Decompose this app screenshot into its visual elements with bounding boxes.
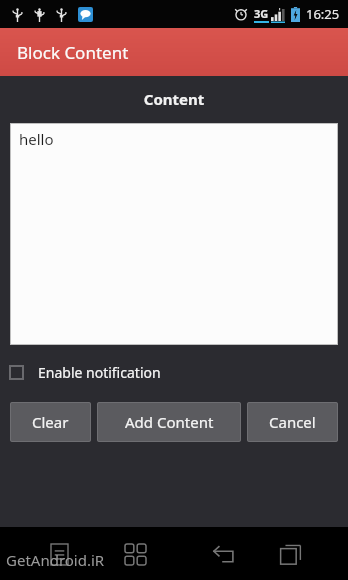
staticText: Cancel xyxy=(269,412,316,432)
staticText: Add Content xyxy=(125,412,214,432)
button[interactable]: Block Content xyxy=(0,28,348,76)
button[interactable]: Add Content xyxy=(97,402,241,442)
button[interactable]: Recent apps xyxy=(268,532,312,576)
staticText: Content xyxy=(0,89,348,109)
button[interactable]: Home xyxy=(114,533,156,575)
button[interactable]: Back xyxy=(201,532,245,576)
button[interactable]: Cancel xyxy=(247,402,338,442)
staticText: Block Content xyxy=(17,41,129,64)
staticText: 16:25 xyxy=(306,5,340,23)
staticText: hello xyxy=(19,129,54,149)
button[interactable]: Clear xyxy=(10,402,91,442)
staticText: Enable notification xyxy=(38,363,161,382)
staticText: Clear xyxy=(32,412,69,432)
button[interactable]: Menu xyxy=(38,533,80,575)
button[interactable]: Enable notification xyxy=(0,358,348,386)
staticText: GetAndroid.iR xyxy=(6,550,105,570)
button[interactable]: hello xyxy=(10,123,338,345)
staticText: 3G xyxy=(254,6,269,21)
